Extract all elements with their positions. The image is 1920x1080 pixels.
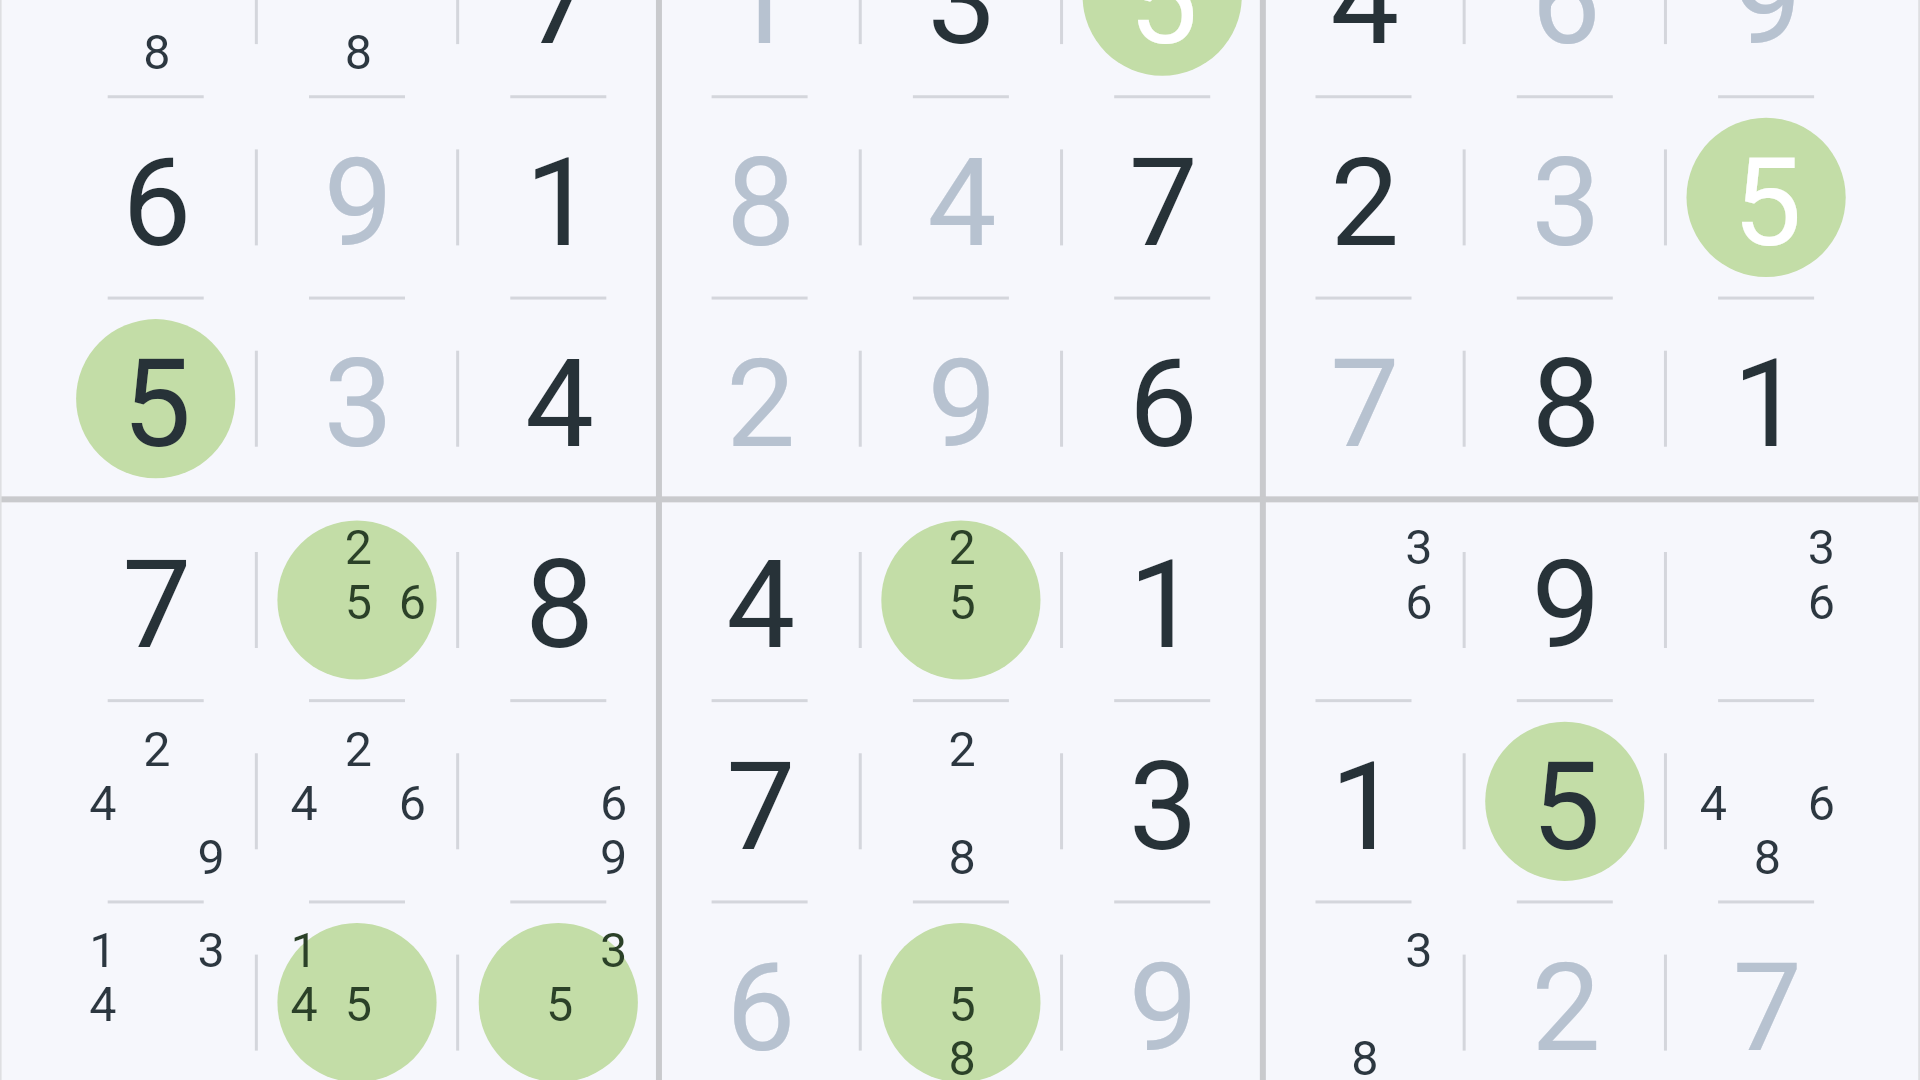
button[interactable]: Cell row 4, column 2, notes 2 5 6 <box>256 499 457 700</box>
button[interactable]: Cell row 4, column 9, notes 3 6 <box>1665 499 1866 700</box>
button[interactable]: Cell row 6, column 9, value 7 <box>1665 902 1866 1080</box>
button[interactable]: Cell row 3, column 5, value 9 <box>860 298 1061 499</box>
button[interactable]: Cell row 4, column 8, value 9 <box>1464 499 1665 700</box>
button[interactable]: Cell row 6, column 4, value 6 <box>659 902 860 1080</box>
button[interactable]: Cell row 1, column 6, value 5 <box>1062 0 1263 96</box>
button[interactable]: Cell row 1, column 8, value 6 <box>1464 0 1665 96</box>
button[interactable]: Cell row 3, column 2, value 3 <box>256 298 457 499</box>
button[interactable]: Cell row 1, column 5, value 3 <box>860 0 1061 96</box>
button[interactable]: Cell row 5, column 7, value 1 <box>1263 701 1464 902</box>
button[interactable]: Cell row 6, column 5, notes 5 8 <box>860 902 1061 1080</box>
button[interactable]: Cell row 6, column 3, notes 3 5 <box>458 902 659 1080</box>
button[interactable]: Cell row 4, column 1, value 7 <box>55 499 256 700</box>
button[interactable]: Cell row 4, column 4, value 4 <box>659 499 860 700</box>
button[interactable]: Cell row 2, column 9, value 5 <box>1665 97 1866 298</box>
button[interactable]: Cell row 5, column 4, value 7 <box>659 701 860 902</box>
button[interactable]: Cell row 3, column 4, value 2 <box>659 298 860 499</box>
button[interactable]: Cell row 5, column 6, value 3 <box>1062 701 1263 902</box>
button[interactable]: Cell row 6, column 2, notes 1 4 5 <box>256 902 457 1080</box>
button[interactable]: Cell row 6, column 8, value 2 <box>1464 902 1665 1080</box>
button[interactable]: Cell row 2, column 4, value 8 <box>659 97 860 298</box>
button[interactable]: Cell row 5, column 9, notes 4 6 8 <box>1665 701 1866 902</box>
button[interactable]: Cell row 2, column 8, value 3 <box>1464 97 1665 298</box>
button[interactable]: Cell row 2, column 5, value 4 <box>860 97 1061 298</box>
button[interactable]: Cell row 2, column 2, value 9 <box>256 97 457 298</box>
button[interactable]: Cell row 3, column 6, value 6 <box>1062 298 1263 499</box>
button[interactable]: Cell row 2, column 3, value 1 <box>458 97 659 298</box>
button[interactable]: Cell row 1, column 1, notes 8 <box>55 0 256 96</box>
button[interactable]: Cell row 3, column 9, value 1 <box>1665 298 1866 499</box>
button[interactable]: Cell row 3, column 8, value 8 <box>1464 298 1665 499</box>
button[interactable]: Cell row 2, column 1, value 6 <box>55 97 256 298</box>
button[interactable]: Cell row 2, column 6, value 7 <box>1062 97 1263 298</box>
button[interactable]: Cell row 3, column 7, value 7 <box>1263 298 1464 499</box>
button[interactable]: Cell row 5, column 1, notes 2 4 9 <box>55 701 256 902</box>
button[interactable]: Cell row 2, column 7, value 2 <box>1263 97 1464 298</box>
button[interactable]: Cell row 1, column 3, value 7 <box>458 0 659 96</box>
button[interactable]: Cell row 6, column 6, value 9 <box>1062 902 1263 1080</box>
button[interactable]: Cell row 4, column 5, notes 2 5 <box>860 499 1061 700</box>
button[interactable]: Cell row 3, column 3, value 4 <box>458 298 659 499</box>
button[interactable]: Cell row 6, column 1, notes 1 3 4 <box>55 902 256 1080</box>
button[interactable]: Cell row 1, column 9, value 9 <box>1665 0 1866 96</box>
button[interactable]: Cell row 5, column 2, notes 2 4 6 <box>256 701 457 902</box>
button[interactable]: Cell row 1, column 7, value 4 <box>1263 0 1464 96</box>
button[interactable]: Cell row 5, column 5, notes 2 8 <box>860 701 1061 902</box>
button[interactable]: Cell row 5, column 3, notes 6 9 <box>458 701 659 902</box>
button[interactable]: Cell row 4, column 3, value 8 <box>458 499 659 700</box>
button[interactable]: Cell row 3, column 1, value 5 <box>55 298 256 499</box>
button[interactable]: Cell row 4, column 6, value 1 <box>1062 499 1263 700</box>
button[interactable]: Cell row 1, column 4, value 1 <box>659 0 860 96</box>
button[interactable]: Cell row 5, column 8, value 5 <box>1464 701 1665 902</box>
button[interactable]: Cell row 6, column 7, notes 3 8 <box>1263 902 1464 1080</box>
button[interactable]: Cell row 4, column 7, notes 3 6 <box>1263 499 1464 700</box>
button[interactable]: Cell row 1, column 2, notes 8 <box>256 0 457 96</box>
